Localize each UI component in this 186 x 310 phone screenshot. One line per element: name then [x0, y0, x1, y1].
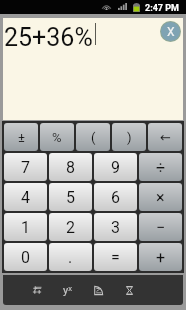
- staticText: 2:47 PM: [145, 3, 179, 14]
- button[interactable]: Constants: [21, 275, 52, 305]
- button[interactable]: (: [76, 123, 110, 151]
- button[interactable]: 7: [4, 153, 47, 181]
- button[interactable]: ×: [139, 183, 182, 211]
- button[interactable]: +: [139, 243, 182, 271]
- staticText: ±: [18, 130, 25, 145]
- button[interactable]: 1: [4, 213, 47, 241]
- button[interactable]: −: [139, 213, 182, 241]
- staticText: (: [91, 130, 96, 145]
- button[interactable]: 0: [4, 243, 47, 271]
- button[interactable]: Power function: [52, 275, 83, 305]
- button[interactable]: ±: [4, 123, 38, 151]
- staticText: −: [156, 218, 166, 237]
- button[interactable]: .: [49, 243, 92, 271]
- staticText: ): [127, 130, 132, 145]
- staticText: 6: [111, 188, 120, 207]
- button[interactable]: 8: [49, 153, 92, 181]
- button[interactable]: 3: [94, 213, 137, 241]
- staticText: +: [156, 248, 166, 267]
- button[interactable]: 6: [94, 183, 137, 211]
- staticText: =: [111, 248, 120, 267]
- button[interactable]: %: [40, 123, 74, 151]
- button[interactable]: ): [112, 123, 146, 151]
- staticText: %: [52, 130, 62, 145]
- staticText: ←: [160, 130, 171, 145]
- staticText: 5: [66, 188, 75, 207]
- staticText: yˣ: [63, 282, 72, 297]
- button[interactable]: 2: [49, 213, 92, 241]
- staticText: .: [68, 248, 73, 267]
- staticText: 25+36%: [4, 23, 93, 52]
- staticText: ÷: [156, 158, 166, 177]
- button[interactable]: Summation: [114, 275, 145, 305]
- button[interactable]: 9: [94, 153, 137, 181]
- staticText: X: [167, 25, 175, 39]
- button[interactable]: =: [94, 243, 137, 271]
- button[interactable]: 5: [49, 183, 92, 211]
- staticText: 3: [111, 218, 120, 237]
- staticText: 7: [21, 158, 30, 177]
- button[interactable]: ÷: [139, 153, 182, 181]
- button[interactable]: 4: [4, 183, 47, 211]
- staticText: 2: [66, 218, 75, 237]
- staticText: ×: [156, 188, 165, 207]
- staticText: 0: [21, 248, 30, 267]
- staticText: 4: [21, 188, 30, 207]
- staticText: 1: [21, 218, 30, 237]
- button[interactable]: Geometry: [83, 275, 114, 305]
- button[interactable]: Clear: [161, 22, 180, 41]
- staticText: 9: [111, 158, 120, 177]
- button[interactable]: ←: [148, 123, 182, 151]
- staticText: 8: [66, 158, 75, 177]
